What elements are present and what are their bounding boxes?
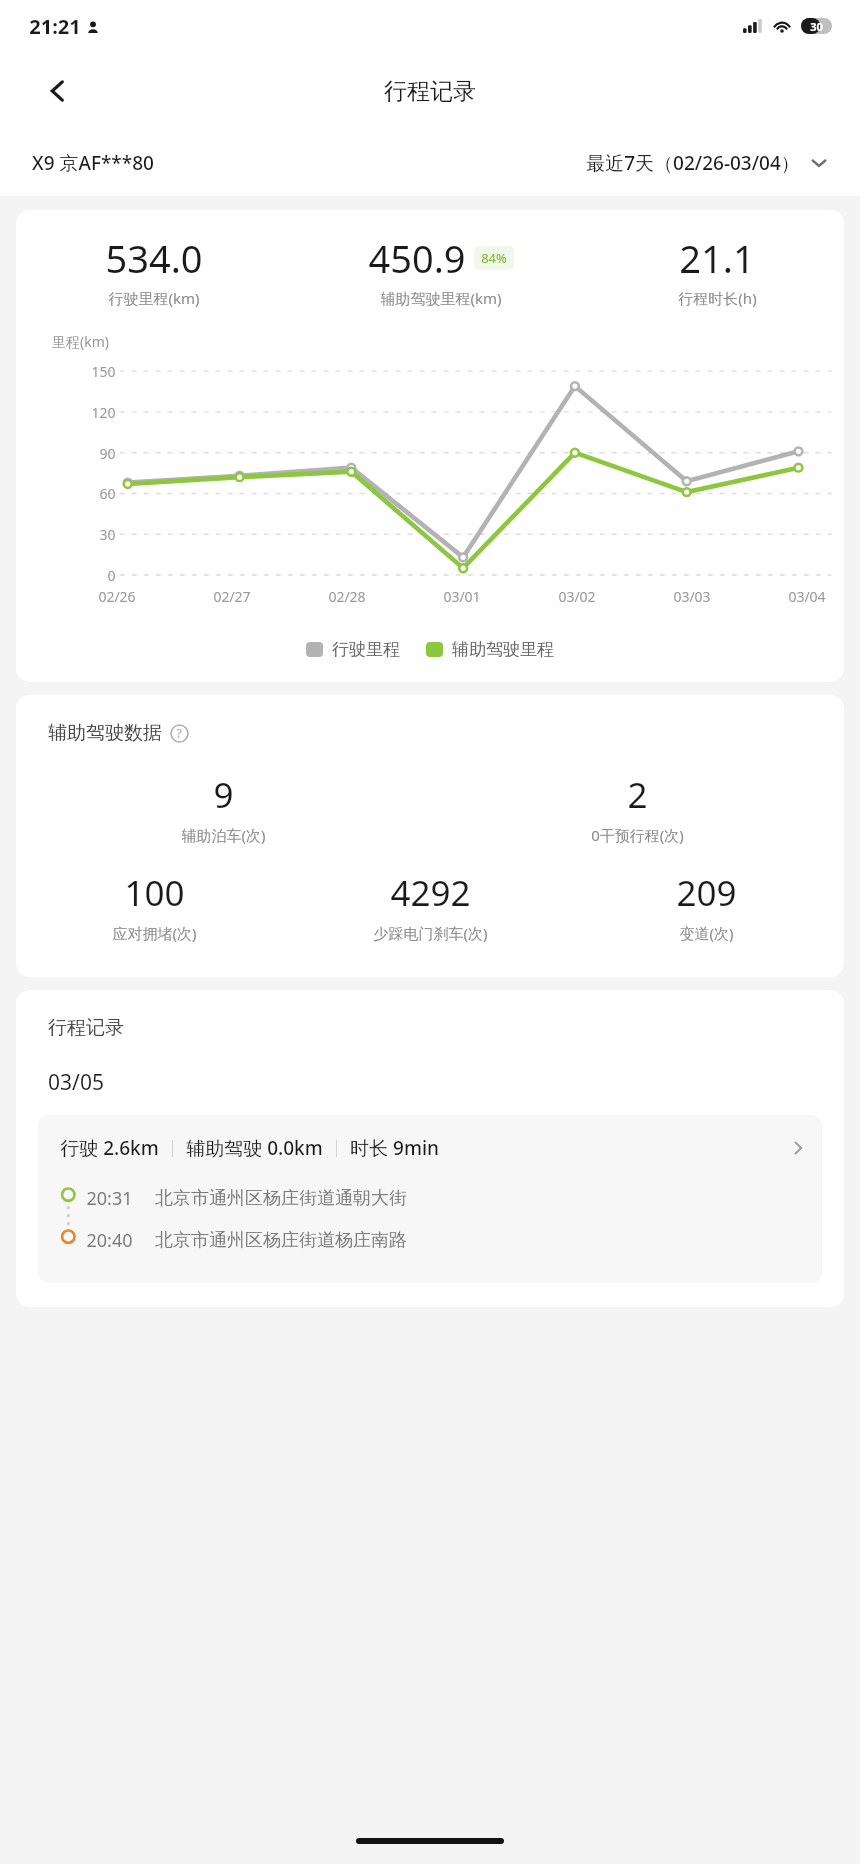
staticText: 辅助驾驶里程(km): [380, 288, 502, 308]
staticText: 21:21: [29, 13, 81, 40]
staticText: 30: [99, 525, 116, 544]
button[interactable]: 行驶 2.6km: [38, 1115, 822, 1283]
staticText: 84%: [481, 249, 507, 267]
staticText: 30: [810, 19, 823, 34]
staticText: ?: [176, 725, 182, 741]
button[interactable]: 说明: [169, 723, 189, 743]
staticText: 应对拥堵(次): [112, 923, 197, 943]
staticText: 450.9: [368, 232, 466, 284]
staticText: 02/28: [328, 587, 366, 606]
staticText: 100: [124, 869, 185, 917]
staticText: 辅助驾驶数据: [48, 721, 162, 745]
staticText: 9: [213, 771, 234, 819]
staticText: 2: [627, 771, 648, 819]
staticText: 时长 9min: [350, 1135, 439, 1161]
staticText: 变道(次): [679, 923, 734, 943]
staticText: 03/05: [48, 1068, 104, 1097]
staticText: 90: [99, 444, 116, 463]
staticText: 行驶 2.6km: [60, 1135, 159, 1161]
staticText: 03/02: [558, 587, 596, 606]
staticText: 辅助驾驶里程: [452, 639, 554, 660]
staticText: 534.0: [105, 232, 203, 284]
staticText: X9 京AF***80: [32, 150, 154, 176]
staticText: 4292: [390, 869, 471, 917]
staticText: 20:40: [86, 1228, 133, 1253]
staticText: 北京市通州区杨庄街道通朝大街: [155, 1187, 407, 1210]
button[interactable]: 最近7天（02/26-03/04）: [586, 150, 828, 176]
staticText: 里程(km): [52, 332, 109, 351]
staticText: 21.1: [679, 232, 755, 284]
staticText: 行程记录: [384, 77, 476, 106]
staticText: 03/01: [443, 587, 481, 606]
staticText: 120: [91, 403, 116, 422]
staticText: 03/04: [788, 587, 826, 606]
staticText: 行程记录: [48, 1016, 124, 1040]
staticText: 辅助泊车(次): [181, 825, 266, 845]
button[interactable]: Back: [36, 69, 80, 113]
staticText: 0干预行程(次): [591, 825, 684, 845]
staticText: 20:31: [86, 1186, 133, 1211]
staticText: 209: [676, 869, 737, 917]
staticText: 150: [91, 362, 116, 381]
staticText: 0: [107, 566, 116, 585]
staticText: 少踩电门刹车(次): [373, 923, 488, 943]
staticText: 60: [99, 484, 116, 503]
staticText: 行驶里程: [332, 639, 400, 660]
staticText: 行驶里程(km): [108, 288, 200, 308]
staticText: 03/03: [673, 587, 711, 606]
staticText: 最近7天（02/26-03/04）: [586, 150, 800, 176]
staticText: 辅助驾驶 0.0km: [186, 1135, 323, 1161]
staticText: 行程时长(h): [678, 288, 757, 308]
staticText: 北京市通州区杨庄街道杨庄南路: [155, 1229, 407, 1252]
staticText: 02/27: [213, 587, 251, 606]
staticText: 02/26: [98, 587, 136, 606]
button[interactable]: X9 京AF***80: [32, 150, 154, 176]
